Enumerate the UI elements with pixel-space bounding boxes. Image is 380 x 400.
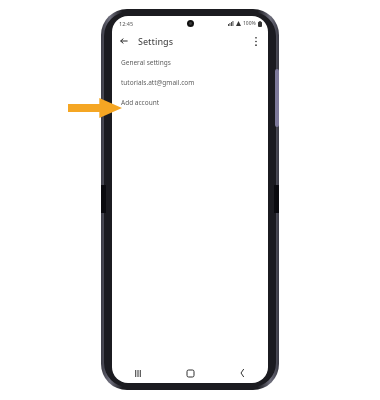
staticText: Settings xyxy=(138,35,174,47)
button[interactable]: More options xyxy=(248,33,264,49)
staticText: Add account xyxy=(121,98,160,107)
staticText: 100% xyxy=(243,20,256,27)
staticText: General settings xyxy=(121,58,171,67)
button[interactable]: tutorials.att@gmail.com xyxy=(112,72,268,92)
button[interactable]: Recents xyxy=(112,363,164,383)
button[interactable]: Back xyxy=(116,33,132,49)
button[interactable]: Home xyxy=(164,363,216,383)
staticText: 12:45 xyxy=(119,20,134,27)
button[interactable]: General settings xyxy=(112,52,268,72)
staticText: tutorials.att@gmail.com xyxy=(121,78,195,87)
button[interactable]: Back xyxy=(216,363,268,383)
other: Power button xyxy=(275,69,279,127)
button[interactable]: Add account xyxy=(112,92,268,112)
